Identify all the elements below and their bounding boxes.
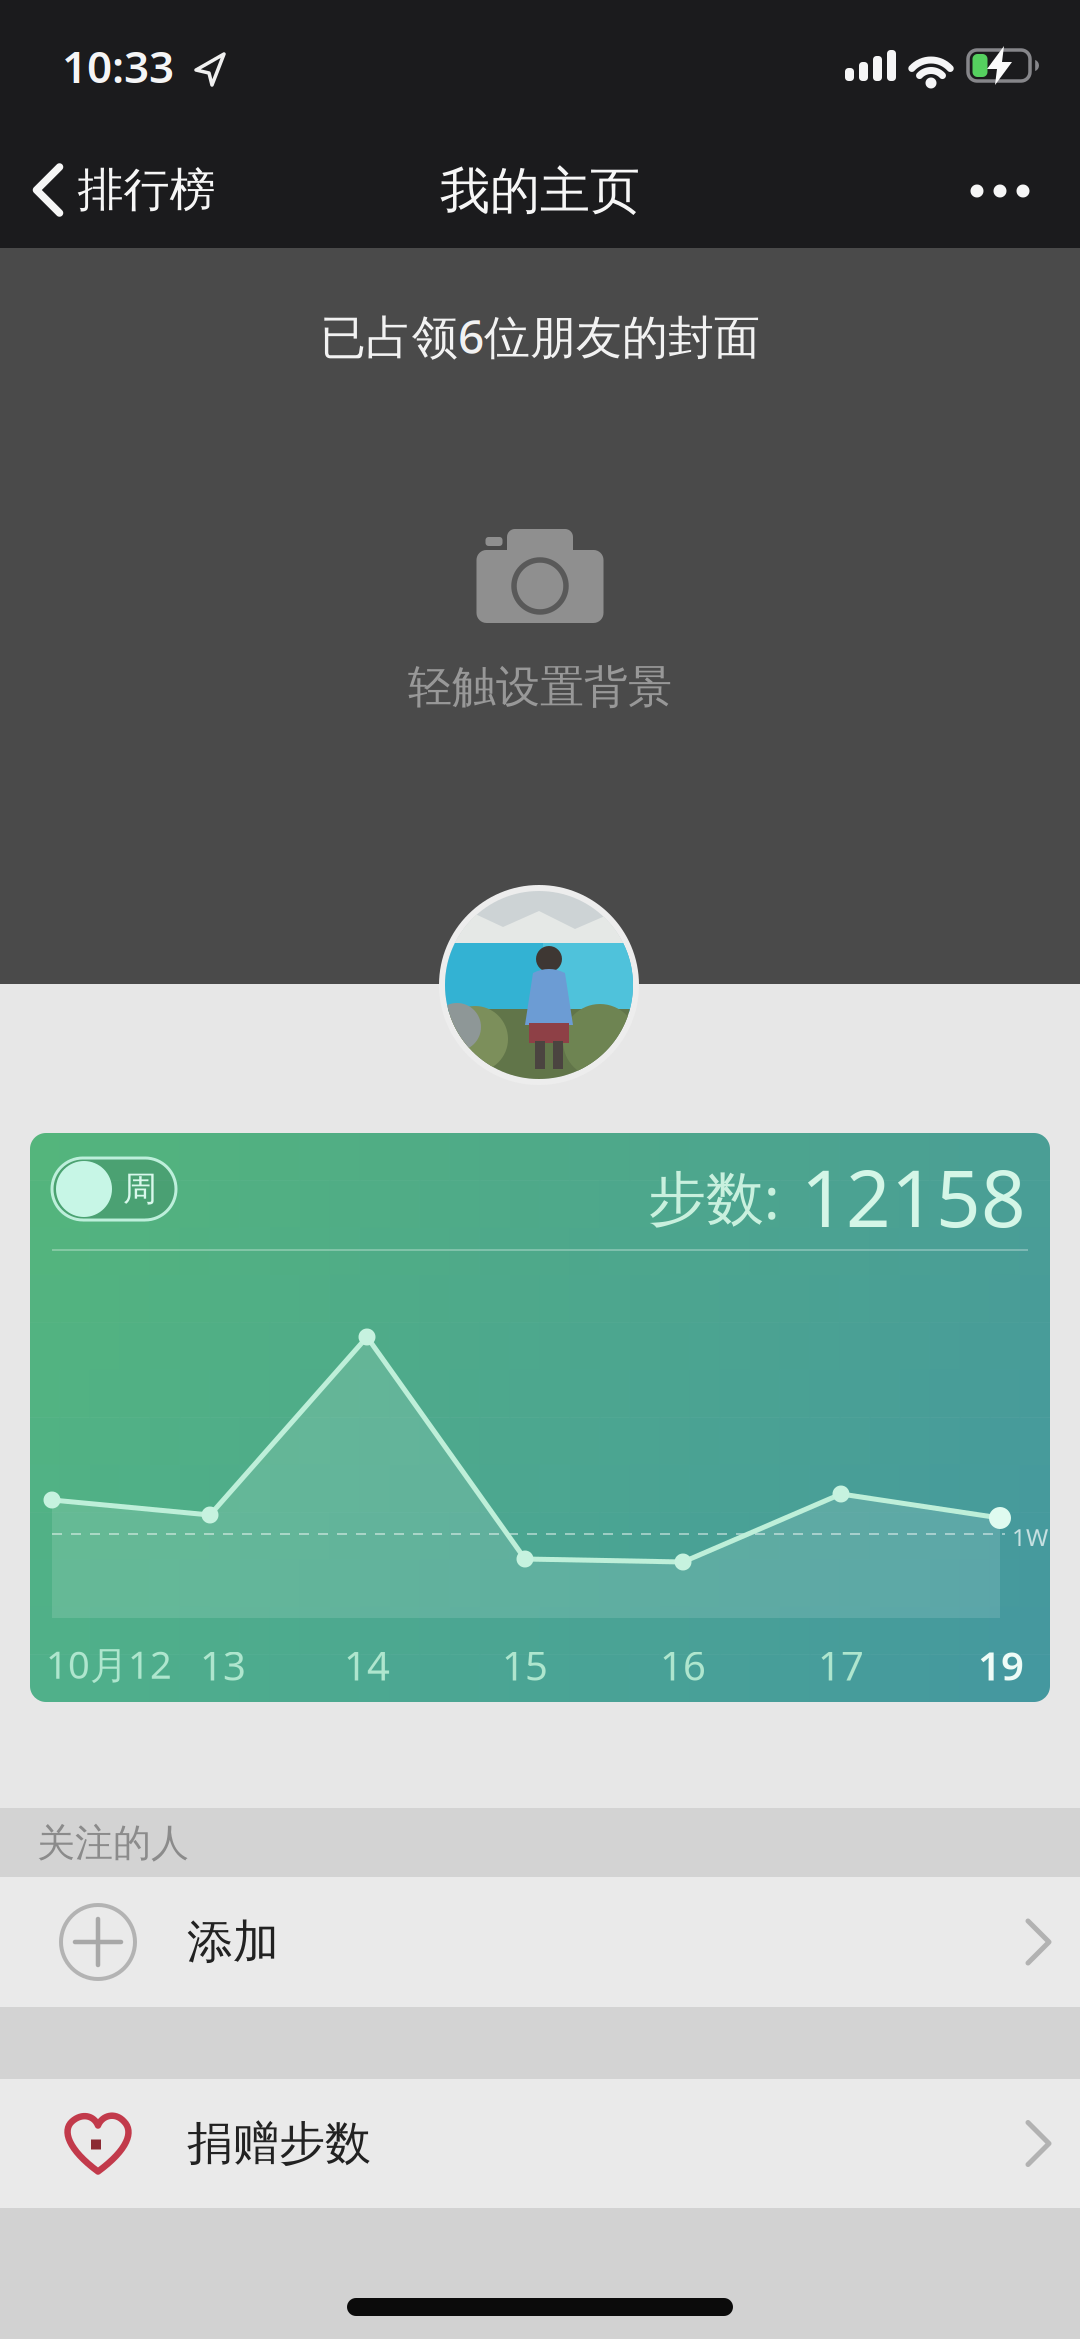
- button[interactable]: 捐赠步数: [0, 2079, 1080, 2208]
- staticText: 排行榜: [77, 162, 215, 218]
- staticText: 轻触设置背景: [408, 660, 672, 714]
- staticText: 我的主页: [440, 160, 640, 222]
- staticText: 关注的人: [37, 1820, 189, 1866]
- staticText: 捐赠步数: [187, 2115, 371, 2172]
- button[interactable]: 周: [52, 1158, 176, 1220]
- staticText: 10:33: [62, 37, 174, 95]
- staticText: 10月12: [46, 1639, 172, 1689]
- staticText: 15: [502, 1638, 548, 1691]
- staticText: 1W: [1012, 1521, 1048, 1553]
- button[interactable]: 添加: [0, 1877, 1080, 2007]
- staticText: 14: [344, 1638, 390, 1691]
- staticText: 17: [818, 1638, 864, 1691]
- staticText: 16: [660, 1638, 706, 1691]
- staticText: 添加: [187, 1914, 279, 1970]
- button[interactable]: 更多: [945, 151, 1055, 231]
- staticText: 已占领6位朋友的封面: [320, 305, 760, 367]
- staticText: 19: [978, 1638, 1024, 1691]
- button[interactable]: 排行榜: [32, 150, 215, 230]
- staticText: 步数:: [648, 1158, 795, 1235]
- staticText: 12158: [801, 1145, 1026, 1249]
- staticText: 13: [200, 1638, 246, 1691]
- staticText: 周: [123, 1168, 157, 1210]
- button[interactable]: 轻触设置背景: [260, 491, 820, 751]
